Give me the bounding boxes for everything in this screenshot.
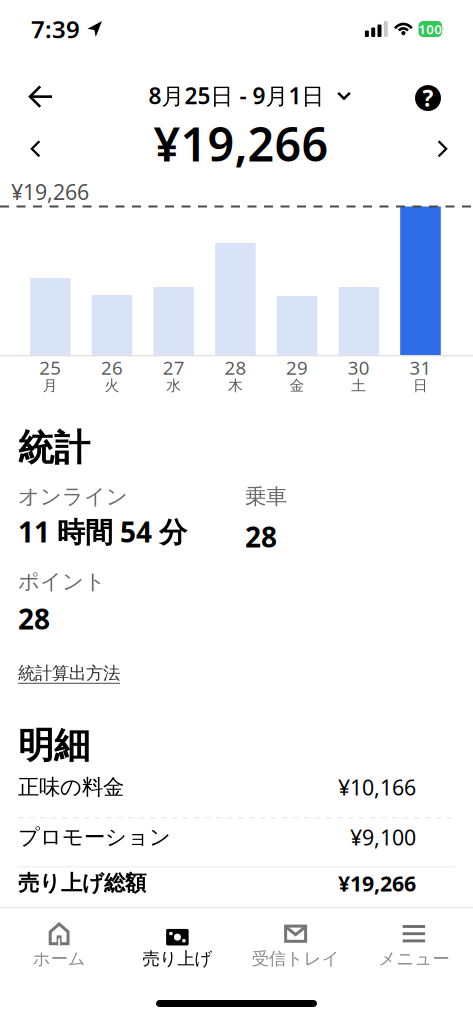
staticText: 日 <box>413 376 428 394</box>
staticText: 月 <box>43 376 58 394</box>
button[interactable]: 受信トレイ <box>236 908 355 975</box>
staticText: 金 <box>290 376 305 394</box>
button[interactable]: Select date range <box>142 72 330 119</box>
staticText: ポイント <box>18 568 106 595</box>
staticText: 明細 <box>18 723 90 768</box>
staticText: 火 <box>104 376 119 394</box>
staticText: ¥19,266 <box>153 112 328 174</box>
staticText: 7:39 <box>31 13 80 45</box>
staticText: 26 <box>101 355 123 380</box>
staticText: 売り上げ総額 <box>18 870 146 896</box>
staticText: 正味の料金 <box>18 774 124 800</box>
staticText: 28 <box>224 355 246 380</box>
staticText: ? <box>422 83 433 113</box>
button[interactable]: ホーム <box>0 908 118 975</box>
staticText: 27 <box>163 355 185 380</box>
button[interactable]: 売り上げ <box>118 908 236 975</box>
staticText: 28 <box>18 600 50 637</box>
button[interactable]: メニュー <box>355 908 473 975</box>
staticText: 100 <box>418 20 442 38</box>
button[interactable]: How statistics are calculated <box>16 660 122 686</box>
staticText: 29 <box>286 355 308 380</box>
button[interactable]: Back <box>0 74 52 119</box>
staticText: オンライン <box>18 483 128 510</box>
staticText: 統計算出方法 <box>18 662 120 684</box>
staticText: 11 時間 54 分 <box>18 513 187 550</box>
staticText: 土 <box>351 376 366 394</box>
staticText: 統計 <box>18 426 90 470</box>
staticText: ¥19,266 <box>338 869 416 897</box>
staticText: ¥19,266 <box>11 177 89 206</box>
staticText: 30 <box>348 355 370 380</box>
staticText: 受信トレイ <box>252 948 340 969</box>
staticText: 31 <box>409 355 431 380</box>
staticText: プロモーション <box>18 824 171 850</box>
staticText: 売り上げ <box>142 948 212 969</box>
staticText: 25 <box>39 355 61 380</box>
button[interactable]: Next week <box>436 128 473 170</box>
staticText: 8月25日 - 9月1日 <box>148 80 324 111</box>
button[interactable]: Help <box>407 75 449 121</box>
staticText: 28 <box>245 518 277 555</box>
staticText: 木 <box>228 376 243 394</box>
staticText: メニュー <box>378 948 449 969</box>
staticText: 乗車 <box>245 483 287 510</box>
button[interactable]: Previous week <box>0 128 42 170</box>
staticText: 水 <box>166 376 181 394</box>
staticText: ¥9,100 <box>350 823 416 851</box>
staticText: ホーム <box>33 948 86 969</box>
staticText: ¥10,166 <box>338 773 416 801</box>
